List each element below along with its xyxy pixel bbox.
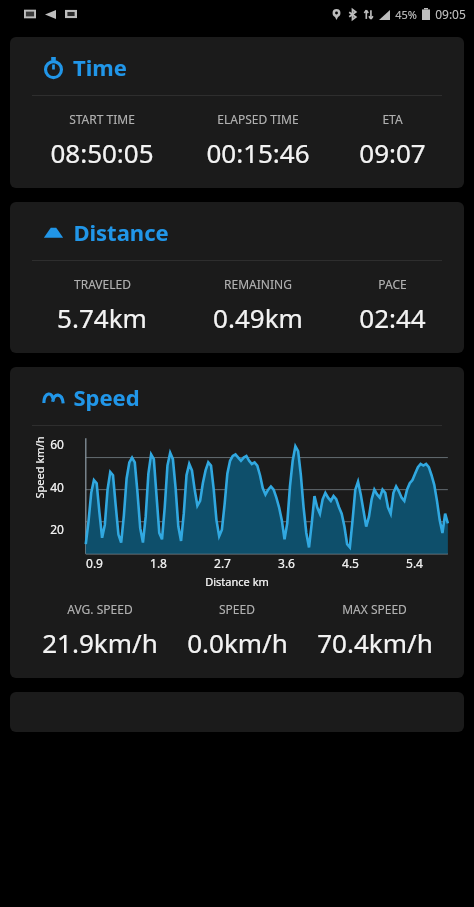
staticText: AVG. SPEED [67, 601, 133, 617]
staticText: 4.5 [342, 555, 359, 571]
staticText: 08:50:05 [50, 135, 154, 170]
staticText: Distance km [205, 574, 269, 589]
staticText: ETA [382, 111, 403, 127]
staticText: 5.74km [57, 300, 147, 335]
other: Speed [43, 387, 64, 408]
staticText: PACE [378, 276, 407, 292]
staticText: 60 [50, 436, 64, 452]
staticText: Time [73, 52, 127, 82]
staticText: 0.0km/h [187, 625, 288, 660]
staticText: 1.8 [150, 555, 167, 571]
staticText: TRAVELED [74, 276, 131, 292]
staticText: REMAINING [224, 276, 292, 292]
other: Time [43, 57, 64, 78]
staticText: 0.9 [86, 555, 103, 571]
staticText: 09:07 [359, 135, 426, 170]
staticText: 0.49km [213, 300, 303, 335]
staticText: 2.7 [214, 555, 231, 571]
staticText: Speed km/h [31, 436, 46, 498]
staticText: 5.4 [406, 555, 423, 571]
staticText: 70.4km/h [317, 625, 433, 660]
staticText: 40 [50, 479, 64, 495]
button[interactable]: Time [10, 37, 464, 188]
staticText: Distance [73, 217, 169, 247]
staticText: SPEED [219, 601, 255, 617]
staticText: ELAPSED TIME [217, 111, 299, 127]
staticText: 09:05 [435, 6, 466, 22]
staticText: 20 [50, 521, 64, 537]
staticText: START TIME [69, 111, 135, 127]
staticText: 02:44 [359, 300, 426, 335]
staticText: Speed [73, 382, 140, 412]
button[interactable]: Speed [10, 367, 464, 678]
button[interactable]: Distance [10, 202, 464, 353]
staticText: 3.6 [278, 555, 295, 571]
other: Distance [43, 222, 64, 243]
staticText: 00:15:46 [206, 135, 310, 170]
staticText: 45% [395, 7, 417, 22]
staticText: 21.9km/h [42, 625, 158, 660]
staticText: MAX SPEED [342, 601, 407, 617]
